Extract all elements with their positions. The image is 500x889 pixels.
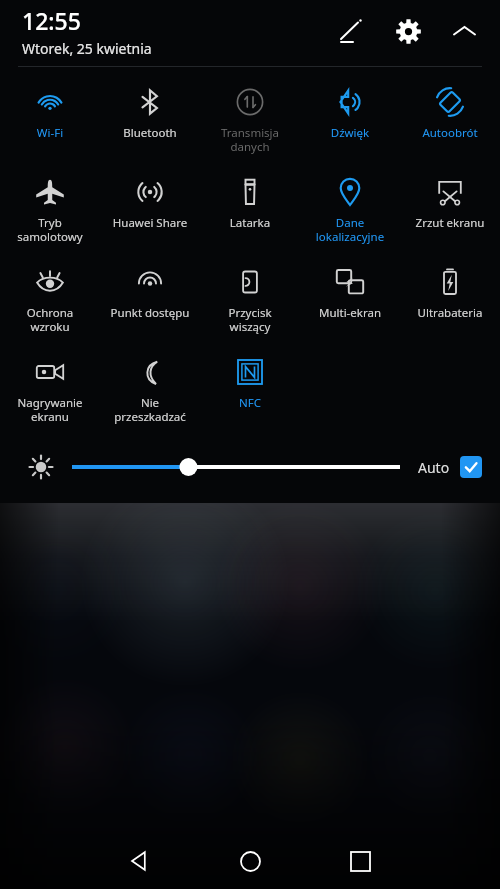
staticText: Dane lokalizacyjne — [302, 215, 398, 244]
staticText: Bluetooth — [102, 125, 198, 141]
staticText: Wtorek, 25 kwietnia — [22, 39, 152, 58]
staticText: Tryb samolotowy — [2, 215, 98, 244]
button[interactable]: Ultrabateria — [400, 259, 500, 349]
button[interactable]: Home — [218, 833, 282, 889]
button[interactable]: Multi-ekran — [300, 259, 400, 349]
button[interactable]: Back — [108, 833, 172, 889]
button[interactable]: Latarka — [200, 169, 300, 259]
staticText: 12:55 — [22, 5, 81, 36]
staticText: Latarka — [202, 215, 298, 231]
other: Brightness — [26, 452, 56, 482]
button[interactable]: Brightness slider — [72, 450, 400, 484]
button[interactable]: Ochrona wzroku — [0, 259, 100, 349]
button[interactable]: NFC — [200, 349, 300, 439]
button[interactable]: Przycisk wiszący — [200, 259, 300, 349]
button[interactable]: Dane lokalizacyjne — [300, 169, 400, 259]
staticText: Ochrona wzroku — [2, 305, 98, 334]
staticText: Nie przeszkadzać — [102, 395, 198, 424]
button[interactable]: Huawei Share — [100, 169, 200, 259]
button[interactable]: Bluetooth — [100, 79, 200, 169]
button[interactable]: Zrzut ekranu — [400, 169, 500, 259]
button[interactable]: Nie przeszkadzać — [100, 349, 200, 439]
button[interactable]: Wi-Fi — [0, 79, 100, 169]
staticText: Dźwięk — [302, 125, 398, 141]
button[interactable]: Edit quick settings — [328, 9, 372, 53]
staticText: Ultrabateria — [402, 305, 498, 321]
button[interactable]: Settings — [386, 9, 430, 53]
staticText: Auto — [418, 458, 450, 477]
staticText: Punkt dostępu — [102, 305, 198, 321]
button[interactable]: Dźwięk — [300, 79, 400, 169]
staticText: NFC — [202, 395, 298, 411]
staticText: Przycisk wiszący — [202, 305, 298, 334]
button[interactable]: Collapse — [442, 9, 486, 53]
staticText: Nagrywanie ekranu — [2, 395, 98, 424]
staticText: Huawei Share — [102, 215, 198, 231]
button[interactable]: Punkt dostępu — [100, 259, 200, 349]
button[interactable]: Transmisja danych — [200, 79, 300, 169]
button[interactable]: Tryb samolotowy — [0, 169, 100, 259]
button[interactable]: Autoobrót — [400, 79, 500, 169]
button[interactable]: Recents — [328, 833, 392, 889]
staticText: Autoobrót — [402, 125, 498, 141]
staticText: Transmisja danych — [202, 125, 298, 154]
staticText: Zrzut ekranu — [402, 215, 498, 231]
button[interactable]: Auto — [418, 456, 482, 478]
staticText: Wi-Fi — [2, 125, 98, 141]
button[interactable]: Nagrywanie ekranu — [0, 349, 100, 439]
staticText: Multi-ekran — [302, 305, 398, 321]
